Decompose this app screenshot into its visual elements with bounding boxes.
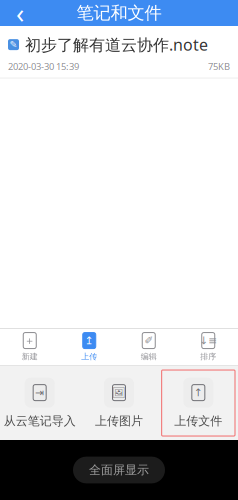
staticText: 75KB: [208, 60, 230, 73]
button[interactable]: ↥: [59, 329, 119, 365]
staticText: ✎: [9, 39, 17, 50]
staticText: 初步了解有道云协作.note: [25, 34, 208, 55]
staticText: ✐: [144, 334, 153, 347]
button[interactable]: ↑: [159, 370, 238, 436]
staticText: ↑: [194, 387, 203, 399]
staticText: 笔记和文件: [76, 2, 161, 24]
staticText: ↥: [85, 334, 94, 347]
button[interactable]: ↓≡: [178, 329, 238, 365]
button[interactable]: ✐: [119, 329, 178, 365]
staticText: ⇥: [35, 387, 44, 399]
button[interactable]: ✎: [0, 26, 238, 79]
staticText: 全面屏显示: [89, 463, 149, 477]
button[interactable]: ＋: [0, 329, 59, 365]
staticText: ↓≡: [199, 334, 217, 347]
staticText: ＋: [24, 334, 35, 347]
staticText: 上传图片: [95, 414, 143, 428]
staticText: 2020-03-30 15:39: [8, 60, 79, 73]
staticText: 上传: [81, 352, 97, 361]
staticText: 上传文件: [174, 414, 222, 428]
button[interactable]: Back: [0, 0, 40, 26]
staticText: 排序: [200, 352, 216, 361]
staticText: 编辑: [141, 352, 157, 361]
staticText: ‹: [16, 0, 24, 31]
staticText: 新建: [22, 352, 38, 361]
staticText: 从云笔记导入: [4, 414, 76, 428]
staticText: 🖼: [112, 386, 126, 399]
button[interactable]: 🖼: [79, 370, 159, 436]
button[interactable]: ⇥: [0, 370, 79, 436]
